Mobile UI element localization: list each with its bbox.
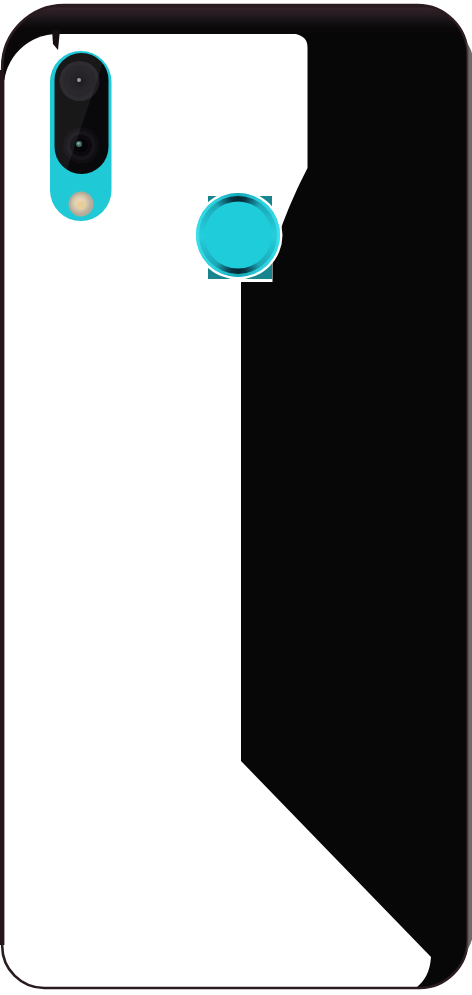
button[interactable]: Phone case back cover xyxy=(0,0,472,995)
